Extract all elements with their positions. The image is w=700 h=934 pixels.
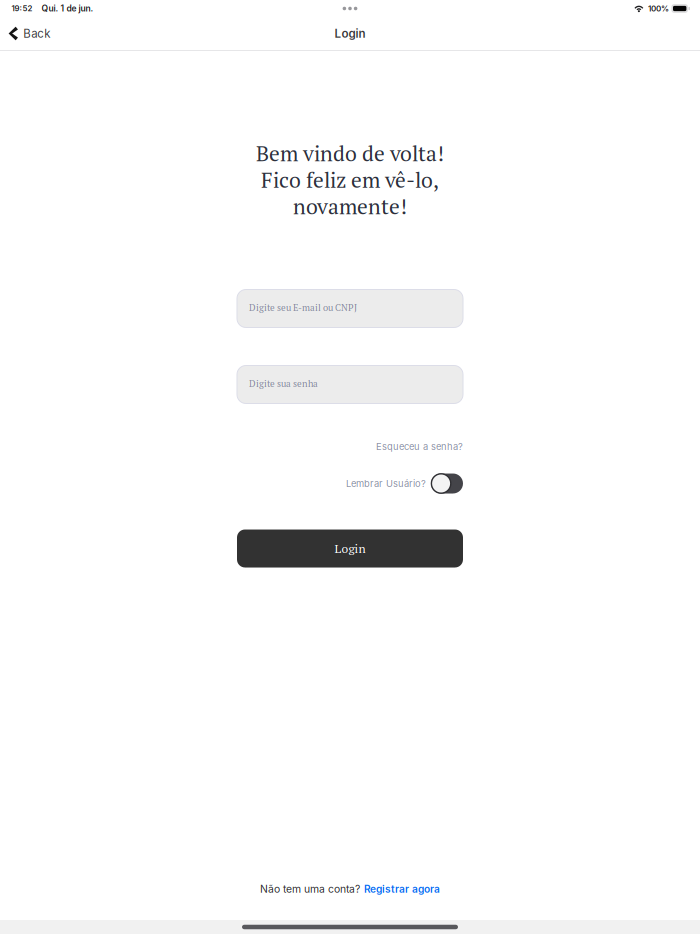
- staticText: novamente!: [293, 192, 407, 220]
- staticText: 100%: [648, 4, 669, 13]
- staticText: Registrar agora: [364, 883, 440, 895]
- staticText: Não tem uma conta?: [260, 883, 360, 895]
- button[interactable]: Login: [237, 529, 463, 567]
- staticText: Fico feliz em vê-lo,: [261, 166, 439, 194]
- staticText: Qui. 1 de jun.: [41, 3, 93, 14]
- button[interactable]: Esqueceu a senha?: [376, 440, 463, 452]
- staticText: Bem vindo de volta!: [256, 139, 444, 167]
- staticText: Login: [334, 541, 365, 556]
- staticText: Lembrar Usuário?: [346, 478, 426, 489]
- staticText: Back: [23, 27, 50, 40]
- button[interactable]: Registrar agora: [364, 883, 440, 895]
- button[interactable]: Lembrar Usuário: [431, 473, 463, 493]
- staticText: Login: [334, 26, 365, 40]
- staticText: Digite sua senha: [249, 377, 318, 390]
- staticText: Digite seu E-mail ou CNPJ: [249, 301, 357, 314]
- staticText: Esqueceu a senha?: [376, 441, 463, 452]
- button[interactable]: Back: [0, 17, 60, 50]
- staticText: 19:52: [11, 4, 32, 13]
